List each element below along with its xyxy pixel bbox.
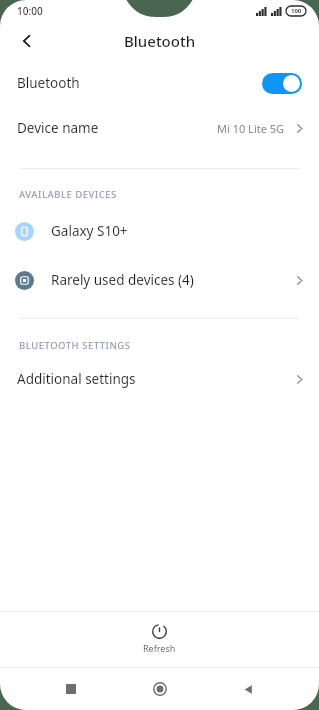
button[interactable]: Back bbox=[10, 24, 44, 58]
staticText: BLUETOOTH SETTINGS bbox=[19, 339, 131, 352]
staticText: AVAILABLE DEVICES bbox=[19, 188, 117, 201]
button[interactable]: Refresh bbox=[125, 620, 194, 658]
button[interactable]: Recents bbox=[53, 671, 89, 707]
staticText: Galaxy S10+ bbox=[51, 222, 128, 240]
button[interactable]: Galaxy S10+ bbox=[0, 214, 319, 248]
staticText: 10:00 bbox=[17, 4, 43, 18]
staticText: Refresh bbox=[143, 642, 176, 654]
staticText: Additional settings bbox=[17, 370, 136, 388]
staticText: Mi 10 Lite 5G bbox=[217, 121, 285, 136]
button[interactable]: Rarely used devices (4) bbox=[0, 263, 319, 297]
staticText: Device name bbox=[17, 119, 99, 137]
button[interactable]: Back bbox=[230, 671, 266, 707]
button[interactable]: Device name bbox=[0, 106, 319, 150]
button[interactable]: Additional settings bbox=[0, 362, 319, 396]
button[interactable]: Home bbox=[142, 671, 178, 707]
staticText: Bluetooth bbox=[17, 74, 80, 92]
staticText: Rarely used devices (4) bbox=[51, 271, 194, 289]
staticText: 100 bbox=[291, 7, 302, 15]
button[interactable]: Bluetooth bbox=[0, 60, 319, 106]
staticText: Bluetooth bbox=[124, 31, 196, 51]
